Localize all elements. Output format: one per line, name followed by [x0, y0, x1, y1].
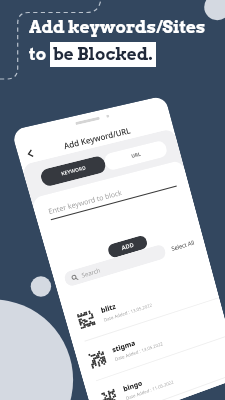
button[interactable]: blitz — [73, 263, 209, 341]
staticText: Date Added : 11.05.2022 — [125, 378, 174, 400]
staticText: Date Added : 13.05.2022 — [103, 301, 153, 323]
staticText: stigma — [111, 338, 137, 355]
button[interactable]: KEYWORD — [39, 155, 107, 188]
staticText: Enter keyword to block — [47, 188, 124, 217]
button[interactable]: bingo — [96, 339, 225, 400]
staticText: blitz — [100, 301, 118, 316]
staticText: Add keywords/Sites — [29, 17, 206, 38]
button[interactable]: stigma — [85, 301, 219, 380]
staticText: bingo — [122, 378, 143, 394]
button[interactable]: Search — [63, 243, 167, 288]
button[interactable]: Select All — [171, 239, 196, 253]
staticText: Search — [81, 266, 101, 280]
staticText: to — [29, 44, 50, 65]
button[interactable]: Back — [22, 146, 37, 161]
staticText: Date Added : 13.05.2022 — [114, 340, 164, 362]
staticText: be Blocked. — [53, 44, 153, 65]
button[interactable]: ADD — [106, 234, 149, 259]
staticText: Add Keyword/URL — [62, 124, 132, 151]
staticText: KEYWORD — [60, 164, 87, 178]
button[interactable]: URL — [103, 140, 169, 171]
staticText: ADD — [121, 241, 135, 252]
staticText: URL — [130, 151, 142, 160]
